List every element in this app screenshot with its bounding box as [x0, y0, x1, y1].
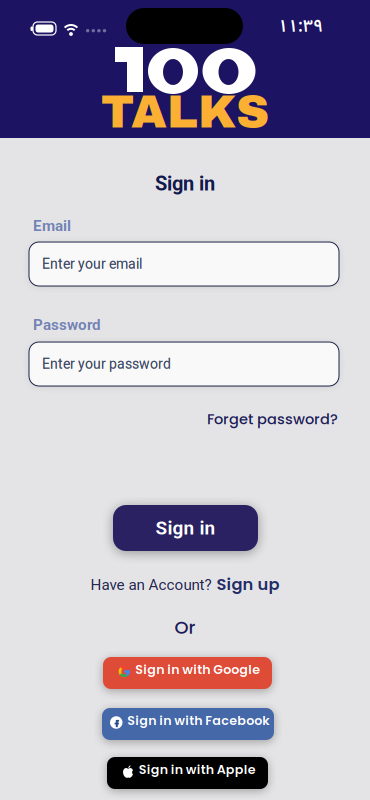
button[interactable]: Sign in — [113, 505, 258, 551]
staticText: Sign in — [155, 517, 215, 539]
staticText: Sign in with Apple — [139, 761, 256, 778]
button[interactable]: Sign in with Google — [103, 657, 272, 689]
button[interactable]: Sign up — [216, 573, 279, 596]
staticText: Have an Account? — [90, 576, 211, 594]
staticText: Password — [33, 316, 101, 334]
staticText: Email — [33, 217, 71, 235]
staticText: Enter your email — [42, 256, 142, 272]
staticText: Enter your email — [42, 256, 142, 272]
button[interactable]: Sign in with Apple — [107, 757, 268, 789]
staticText: Sign in — [155, 172, 215, 195]
staticText: Forget password? — [207, 409, 338, 429]
textField[interactable]: Enter your email — [42, 256, 339, 272]
staticText: Sign up — [216, 573, 279, 596]
staticText: Sign in with Google — [135, 661, 260, 678]
staticText: ١١:٣٩ — [278, 8, 323, 45]
button[interactable]: Sign in with Facebook — [102, 708, 274, 740]
textField[interactable]: Enter your password — [42, 356, 339, 372]
staticText: Or — [174, 615, 195, 640]
staticText: Sign in with Facebook — [127, 712, 269, 729]
staticText: Enter your password — [42, 356, 171, 372]
staticText: Enter your password — [42, 356, 171, 372]
button[interactable]: Forget password? — [207, 409, 338, 429]
staticText: TALKS — [101, 87, 269, 137]
